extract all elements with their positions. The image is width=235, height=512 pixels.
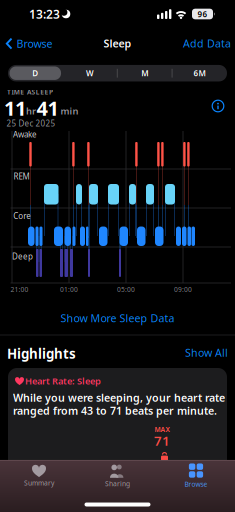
button[interactable]: Browse — [161, 456, 231, 496]
staticText: Browse — [184, 480, 207, 489]
staticText: Add Data — [183, 36, 231, 50]
button[interactable]: W — [65, 66, 115, 80]
button[interactable]: D — [9, 66, 61, 80]
staticText: Awake — [13, 129, 37, 140]
staticText: MAX — [154, 425, 169, 434]
staticText: 01:00 — [60, 285, 78, 294]
staticText: 96 — [197, 9, 207, 19]
staticText: Sleep — [103, 36, 131, 50]
button[interactable]: Show More Sleep Data — [60, 311, 174, 325]
button[interactable]: 6M — [175, 66, 225, 80]
button[interactable]: Add Data — [183, 36, 231, 50]
staticText: M — [141, 68, 148, 78]
staticText: Show More Sleep Data — [60, 311, 174, 325]
button[interactable]: Show All — [185, 345, 228, 360]
staticText: 6M — [194, 68, 206, 78]
staticText: Summary — [24, 479, 54, 487]
button[interactable]: Summary — [4, 456, 74, 496]
staticText: 09:00 — [174, 285, 192, 294]
staticText: Core — [13, 211, 31, 221]
staticText: REM — [13, 171, 29, 182]
staticText: W — [86, 68, 94, 78]
button[interactable] — [211, 99, 225, 113]
button[interactable]: M — [120, 66, 170, 80]
staticText: min — [60, 105, 78, 117]
staticText: 05:00 — [117, 285, 135, 294]
staticText: While you were sleeping, your heart rate — [13, 390, 225, 405]
staticText: hr — [26, 105, 36, 117]
staticText: Show All — [185, 345, 228, 360]
staticText: TIME ASLEEP — [7, 88, 53, 96]
staticText: ranged from 43 to 71 beats per minute. — [13, 403, 217, 418]
button[interactable]: Browse — [0, 29, 62, 57]
staticText: Deep — [12, 251, 33, 262]
staticText: Browse — [16, 36, 52, 51]
button[interactable]: Sharing — [82, 456, 152, 496]
staticText: D — [32, 68, 38, 78]
staticText: Heart Rate: Sleep — [25, 375, 101, 387]
staticText: Sharing — [105, 479, 130, 488]
staticText: 21:00 — [10, 285, 28, 294]
button[interactable] — [8, 368, 227, 475]
staticText: 11 — [4, 95, 26, 121]
staticText: Highlights — [7, 345, 76, 362]
staticText: 13:23 — [29, 6, 60, 22]
staticText: 41 — [36, 95, 58, 121]
staticText: 25 Dec 2025 — [6, 118, 55, 129]
staticText: 71 — [154, 432, 170, 449]
